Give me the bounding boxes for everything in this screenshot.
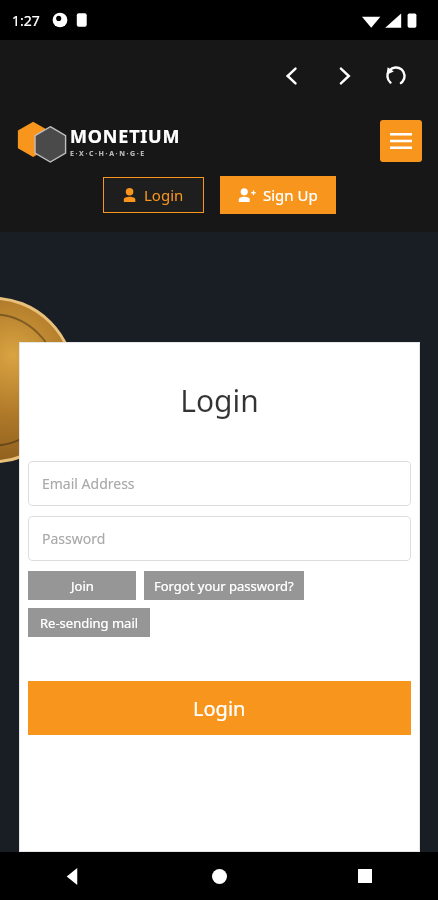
- staticText: Sign Up: [263, 185, 318, 205]
- button[interactable]: Login: [28, 681, 411, 735]
- button[interactable]: Email Address: [28, 461, 411, 506]
- button[interactable]: MONETIUM: [16, 112, 181, 170]
- button[interactable]: Menu: [380, 120, 422, 162]
- staticText: Forgot your password?: [154, 577, 294, 595]
- staticText: Password: [42, 529, 106, 548]
- button[interactable]: Home: [146, 852, 292, 900]
- button[interactable]: Recents: [292, 852, 438, 900]
- staticText: MONETIUM: [70, 124, 181, 149]
- button[interactable]: Back: [270, 54, 314, 98]
- staticText: Join: [71, 577, 94, 595]
- staticText: Login: [144, 185, 184, 205]
- button[interactable]: Re-sending mail: [28, 608, 150, 637]
- staticText: Login: [193, 695, 246, 722]
- button[interactable]: Join: [28, 571, 136, 600]
- button[interactable]: Login: [103, 177, 204, 213]
- staticText: Re-sending mail: [40, 614, 139, 632]
- staticText: Email Address: [42, 474, 135, 493]
- button[interactable]: Password: [28, 516, 411, 561]
- button[interactable]: Back: [0, 852, 146, 900]
- button[interactable]: Reload: [374, 54, 418, 98]
- staticText: E·X·C·H·A·N·G·E: [70, 149, 146, 159]
- button[interactable]: Forward: [322, 54, 366, 98]
- staticText: Login: [28, 380, 411, 421]
- button[interactable]: Sign Up: [220, 176, 336, 214]
- staticText: 1:27: [12, 11, 40, 30]
- button[interactable]: Forgot your password?: [144, 571, 304, 600]
